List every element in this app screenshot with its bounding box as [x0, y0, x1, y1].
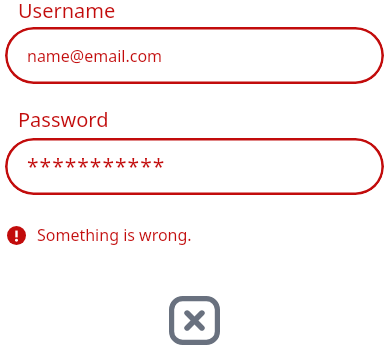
staticText: name@email.com [27, 45, 163, 67]
button[interactable]: name@email.com [5, 27, 384, 84]
button[interactable]: *********** [5, 138, 384, 195]
staticText: *********** [27, 152, 166, 181]
staticText: Username [18, 0, 116, 19]
staticText: Password [18, 106, 109, 133]
staticText: Something is wrong. [37, 224, 192, 246]
button[interactable]: Close [169, 296, 220, 345]
